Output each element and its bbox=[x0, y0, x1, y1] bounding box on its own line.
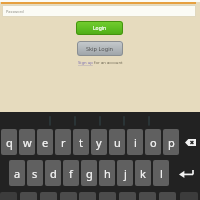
staticText: f bbox=[69, 166, 73, 181]
staticText: j bbox=[124, 166, 127, 181]
staticText: o bbox=[150, 135, 157, 150]
button[interactable]: e bbox=[37, 129, 53, 155]
button[interactable]: i bbox=[127, 129, 143, 155]
staticText: i bbox=[134, 135, 137, 150]
button[interactable]: Password bbox=[2, 5, 196, 17]
button[interactable]: z bbox=[20, 192, 37, 200]
staticText: l bbox=[160, 166, 163, 181]
button[interactable]: p bbox=[163, 129, 179, 155]
staticText: q bbox=[6, 135, 13, 150]
staticText: Password bbox=[6, 9, 24, 14]
staticText: Login bbox=[93, 25, 107, 32]
staticText: a bbox=[14, 166, 21, 181]
staticText: s bbox=[32, 166, 38, 181]
staticText: d bbox=[50, 166, 57, 181]
button[interactable]: Sign up bbox=[78, 60, 93, 66]
staticText: r bbox=[61, 135, 66, 150]
staticText: w bbox=[23, 135, 32, 150]
button[interactable]: y bbox=[91, 129, 107, 155]
button[interactable]: d bbox=[45, 160, 61, 186]
staticText: h bbox=[104, 166, 111, 181]
button[interactable]: n bbox=[119, 192, 136, 200]
staticText: u bbox=[114, 135, 121, 150]
button[interactable]: a bbox=[9, 160, 25, 186]
staticText: Skip Login bbox=[86, 45, 114, 53]
staticText: g bbox=[86, 166, 93, 181]
staticText: e bbox=[42, 135, 49, 150]
button[interactable]: Login bbox=[76, 21, 123, 35]
staticText: for an account bbox=[93, 60, 123, 66]
button[interactable]: u bbox=[109, 129, 125, 155]
button[interactable]: c bbox=[60, 192, 77, 200]
button[interactable]: q bbox=[1, 129, 17, 155]
staticText: p bbox=[168, 135, 175, 150]
button[interactable]: t bbox=[73, 129, 89, 155]
button[interactable]: x bbox=[40, 192, 57, 200]
button[interactable]: o bbox=[145, 129, 161, 155]
button[interactable] bbox=[159, 192, 176, 200]
button[interactable]: w bbox=[19, 129, 35, 155]
staticText: y bbox=[96, 135, 102, 150]
button[interactable]: Enter bbox=[172, 160, 200, 186]
button[interactable]: h bbox=[99, 160, 115, 186]
button[interactable]: j bbox=[117, 160, 133, 186]
button[interactable]: b bbox=[99, 192, 116, 200]
button[interactable]: r bbox=[55, 129, 71, 155]
button[interactable]: k bbox=[135, 160, 151, 186]
button[interactable]: s bbox=[27, 160, 43, 186]
button[interactable]: g bbox=[81, 160, 97, 186]
staticText: t bbox=[79, 135, 83, 150]
button[interactable]: Backspace bbox=[181, 129, 200, 155]
button[interactable]: f bbox=[63, 160, 79, 186]
button[interactable]: m bbox=[139, 192, 156, 200]
button[interactable]: l bbox=[153, 160, 169, 186]
staticText: k bbox=[140, 166, 146, 181]
button[interactable]: v bbox=[79, 192, 96, 200]
button[interactable]: Skip Login bbox=[77, 41, 123, 56]
